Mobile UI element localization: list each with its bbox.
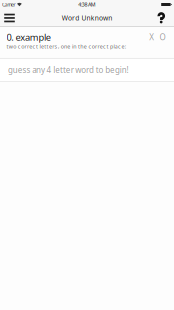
staticText: Carrier [2,1,16,8]
staticText: X [149,32,154,42]
staticText: guess any 4 letter word to begin! [8,65,128,75]
button[interactable]: Help [150,9,174,27]
staticText: 0. example [6,31,51,43]
button[interactable]: Menu [0,9,21,27]
staticText: O [159,32,165,42]
staticText: 4:38 AM [78,1,96,8]
staticText: Word Unknown [62,14,112,22]
staticText: two correct letters, one in the correct … [6,43,126,50]
